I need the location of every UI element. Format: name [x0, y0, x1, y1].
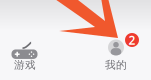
staticText: 2 — [128, 32, 135, 48]
button[interactable]: 游戏 — [1, 33, 49, 73]
button[interactable]: 我的 — [92, 33, 140, 73]
staticText: 我的 — [105, 58, 127, 71]
staticText: 游戏 — [14, 58, 36, 71]
